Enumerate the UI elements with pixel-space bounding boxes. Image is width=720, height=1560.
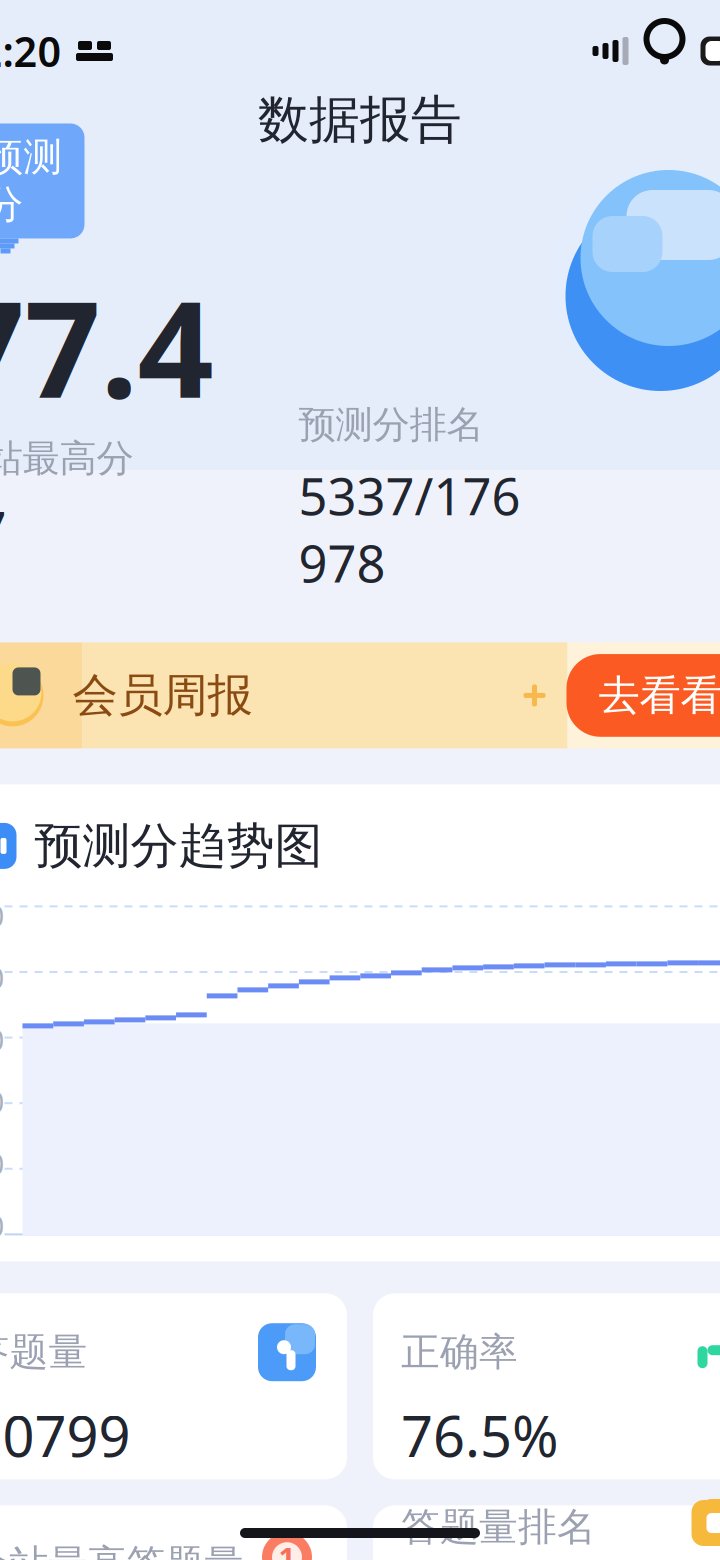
staticText: 答题量排名 [401, 1503, 596, 1551]
staticText: 20 [0, 1144, 4, 1183]
staticText: 预测分排名 [298, 402, 483, 448]
staticText: 答题量 [0, 1328, 87, 1376]
staticText: 全站最高分 [0, 436, 133, 481]
button[interactable]: 正确率 [373, 1293, 720, 1479]
staticText: 40 [0, 1082, 4, 1121]
button[interactable]: 返回 [0, 80, 6, 160]
staticText: 97 [0, 495, 6, 563]
staticText: 正确率 [401, 1328, 518, 1376]
staticText: 去看看 [598, 670, 720, 721]
staticText: 0 [0, 1206, 4, 1245]
staticText: 80 [0, 958, 4, 997]
staticText: 预测分趋势图 [34, 816, 322, 875]
button[interactable]: 答题量 [0, 1293, 347, 1479]
staticText: 22:20 [0, 24, 61, 78]
button[interactable]: 会员周报 [0, 642, 720, 748]
staticText: 76.5% [401, 1398, 559, 1473]
button[interactable]: 全站最高答题量 [0, 1505, 347, 1560]
button[interactable]: 答题量排名 [373, 1505, 720, 1560]
staticText: 1 [278, 1538, 295, 1560]
staticText: 会员周报 [72, 668, 252, 723]
staticText: 60 [0, 1020, 4, 1059]
staticText: 100 [0, 896, 4, 935]
staticText: 全站最高答题量 [0, 1540, 243, 1560]
staticText: 20799 [0, 1398, 130, 1473]
staticText: 预测分 [0, 133, 62, 228]
staticText: 77.4 [0, 257, 213, 435]
staticText: 数据报告 [258, 89, 462, 151]
staticText: 5337/176978 [298, 462, 520, 596]
